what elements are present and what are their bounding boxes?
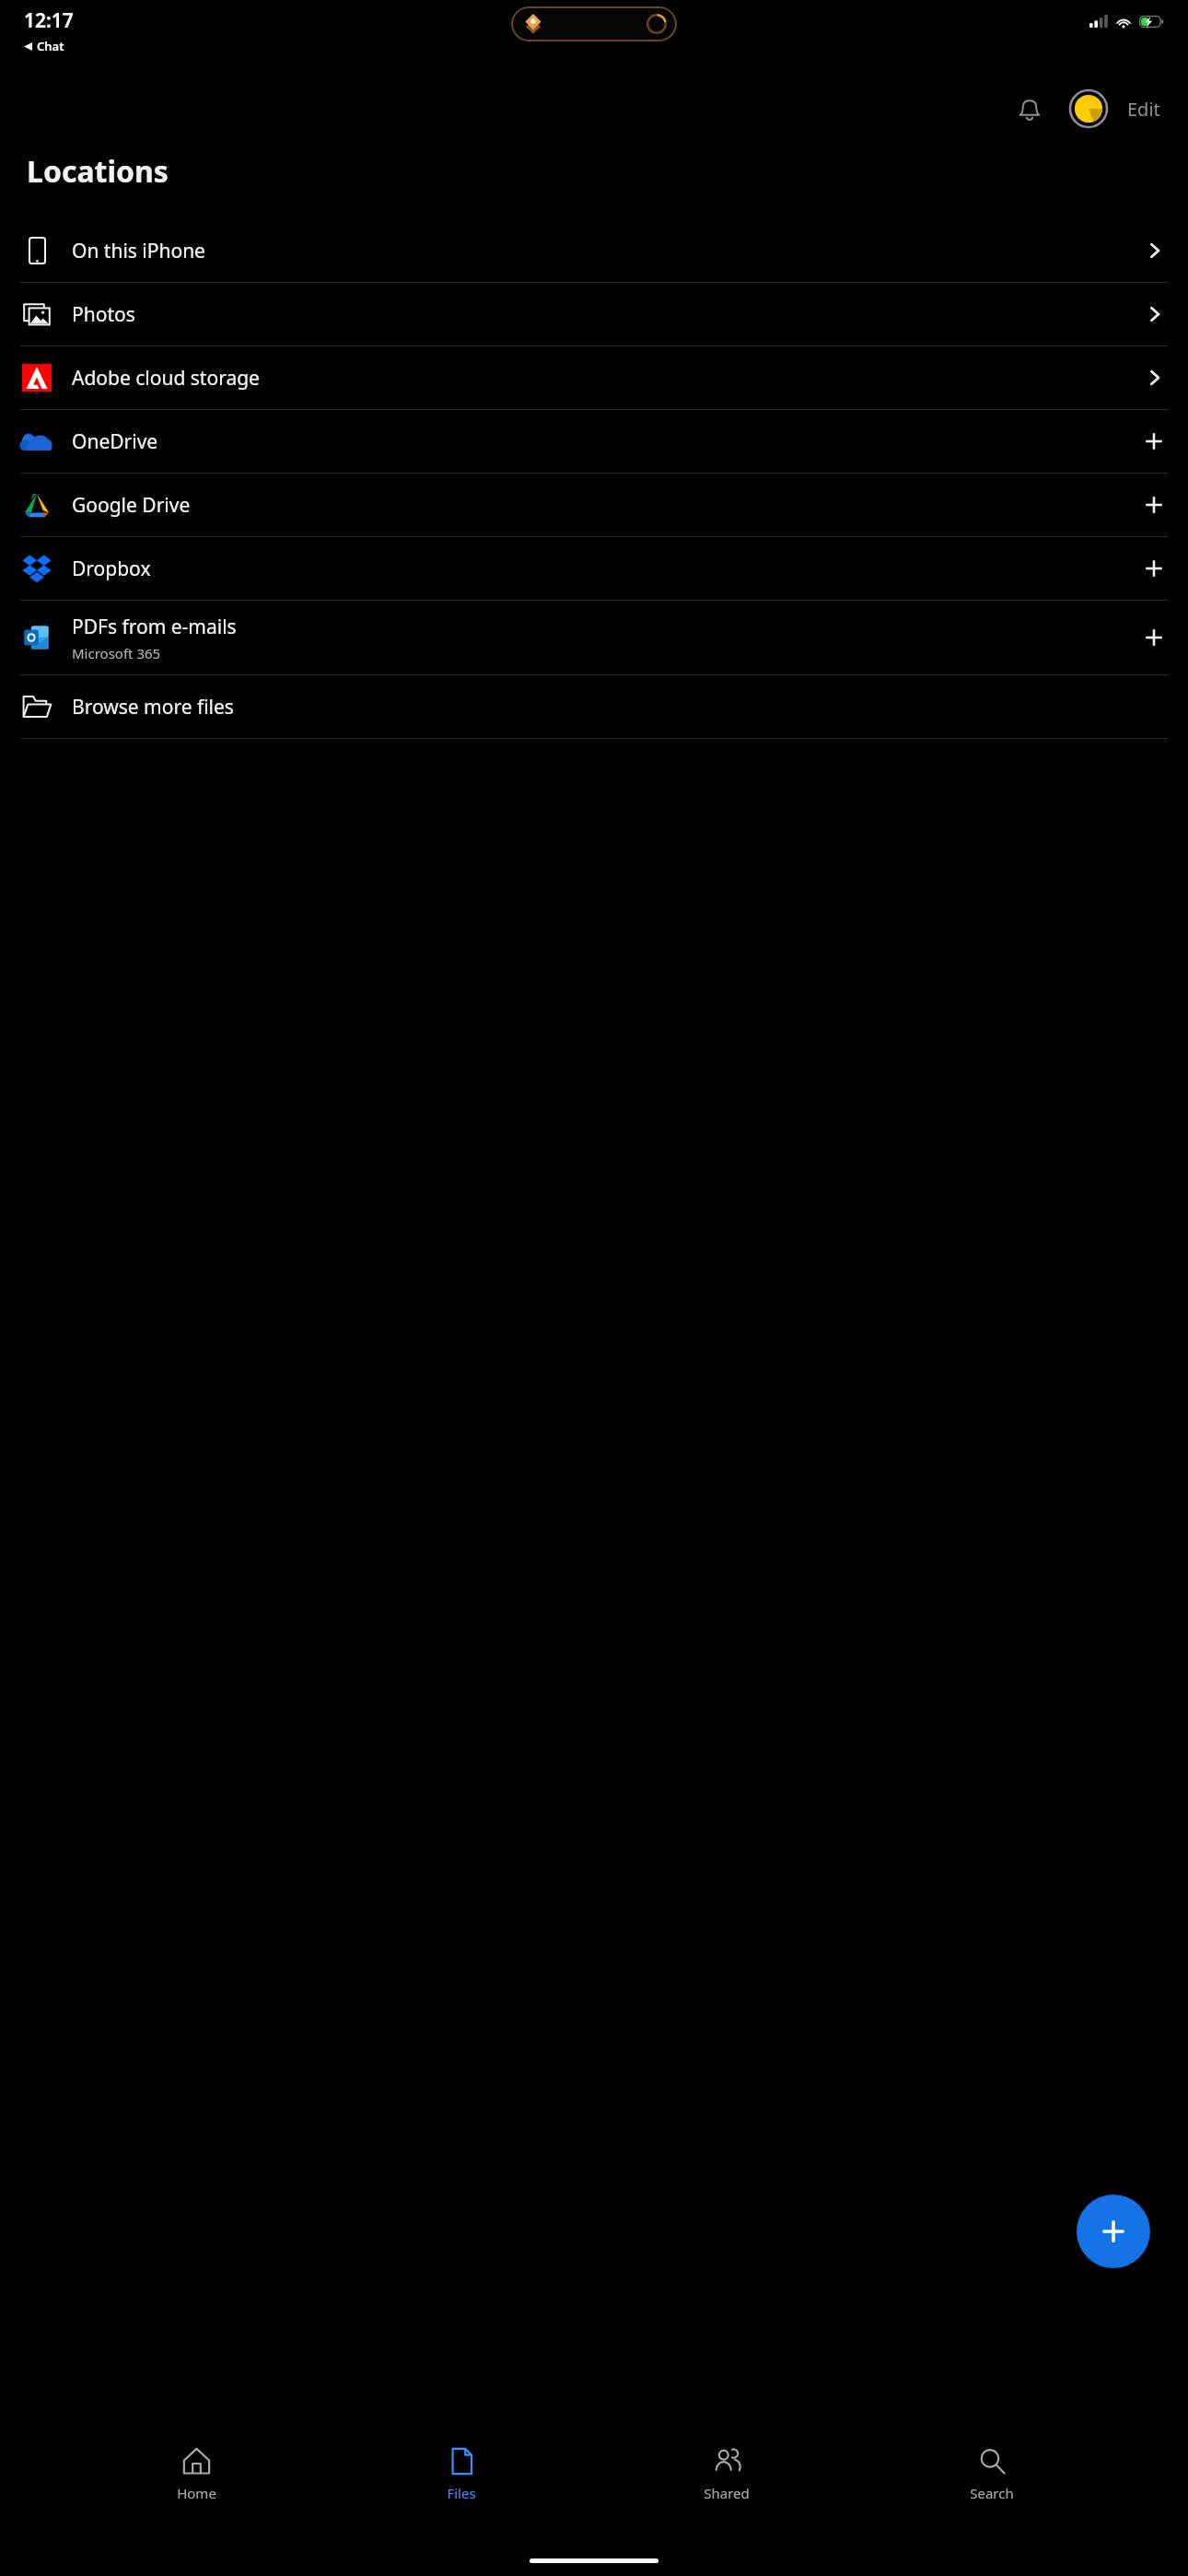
- staticText: Locations: [27, 151, 169, 192]
- button[interactable]: Shared: [658, 2434, 796, 2502]
- button[interactable]: Create: [1077, 2195, 1150, 2268]
- button[interactable]: Edit: [1122, 89, 1166, 129]
- button[interactable]: Notifications: [1007, 87, 1052, 131]
- staticText: Chat: [37, 38, 64, 54]
- staticText: Google Drive: [72, 492, 191, 519]
- staticText: OneDrive: [72, 428, 158, 455]
- staticText: Adobe cloud storage: [72, 365, 260, 392]
- button[interactable]: Photos: [0, 283, 1188, 345]
- button[interactable]: On this iPhone: [0, 219, 1188, 282]
- staticText: Dropbox: [72, 556, 151, 582]
- button[interactable]: Adobe cloud storage: [0, 346, 1188, 409]
- button[interactable]: Files: [392, 2434, 530, 2502]
- staticText: Search: [970, 2484, 1014, 2502]
- staticText: Home: [177, 2484, 216, 2502]
- staticText: Edit: [1127, 97, 1160, 122]
- staticText: Photos: [72, 301, 135, 328]
- button[interactable]: OneDrive: [0, 410, 1188, 473]
- staticText: Browse more files: [72, 694, 234, 720]
- staticText: On this iPhone: [72, 238, 205, 264]
- button[interactable]: Dropbox: [0, 537, 1188, 600]
- button[interactable]: PDFs from e-mails: [0, 601, 1188, 674]
- button[interactable]: Home: [127, 2434, 265, 2502]
- staticText: Microsoft 365: [72, 644, 161, 662]
- staticText: Files: [447, 2484, 476, 2502]
- staticText: 12:17: [24, 7, 74, 34]
- button[interactable]: Browse more files: [0, 675, 1188, 738]
- staticText: Shared: [704, 2484, 750, 2502]
- staticText: PDFs from e-mails: [72, 614, 237, 640]
- button[interactable]: Search: [923, 2434, 1061, 2502]
- button[interactable]: Account: [1066, 87, 1111, 131]
- button[interactable]: Google Drive: [0, 474, 1188, 536]
